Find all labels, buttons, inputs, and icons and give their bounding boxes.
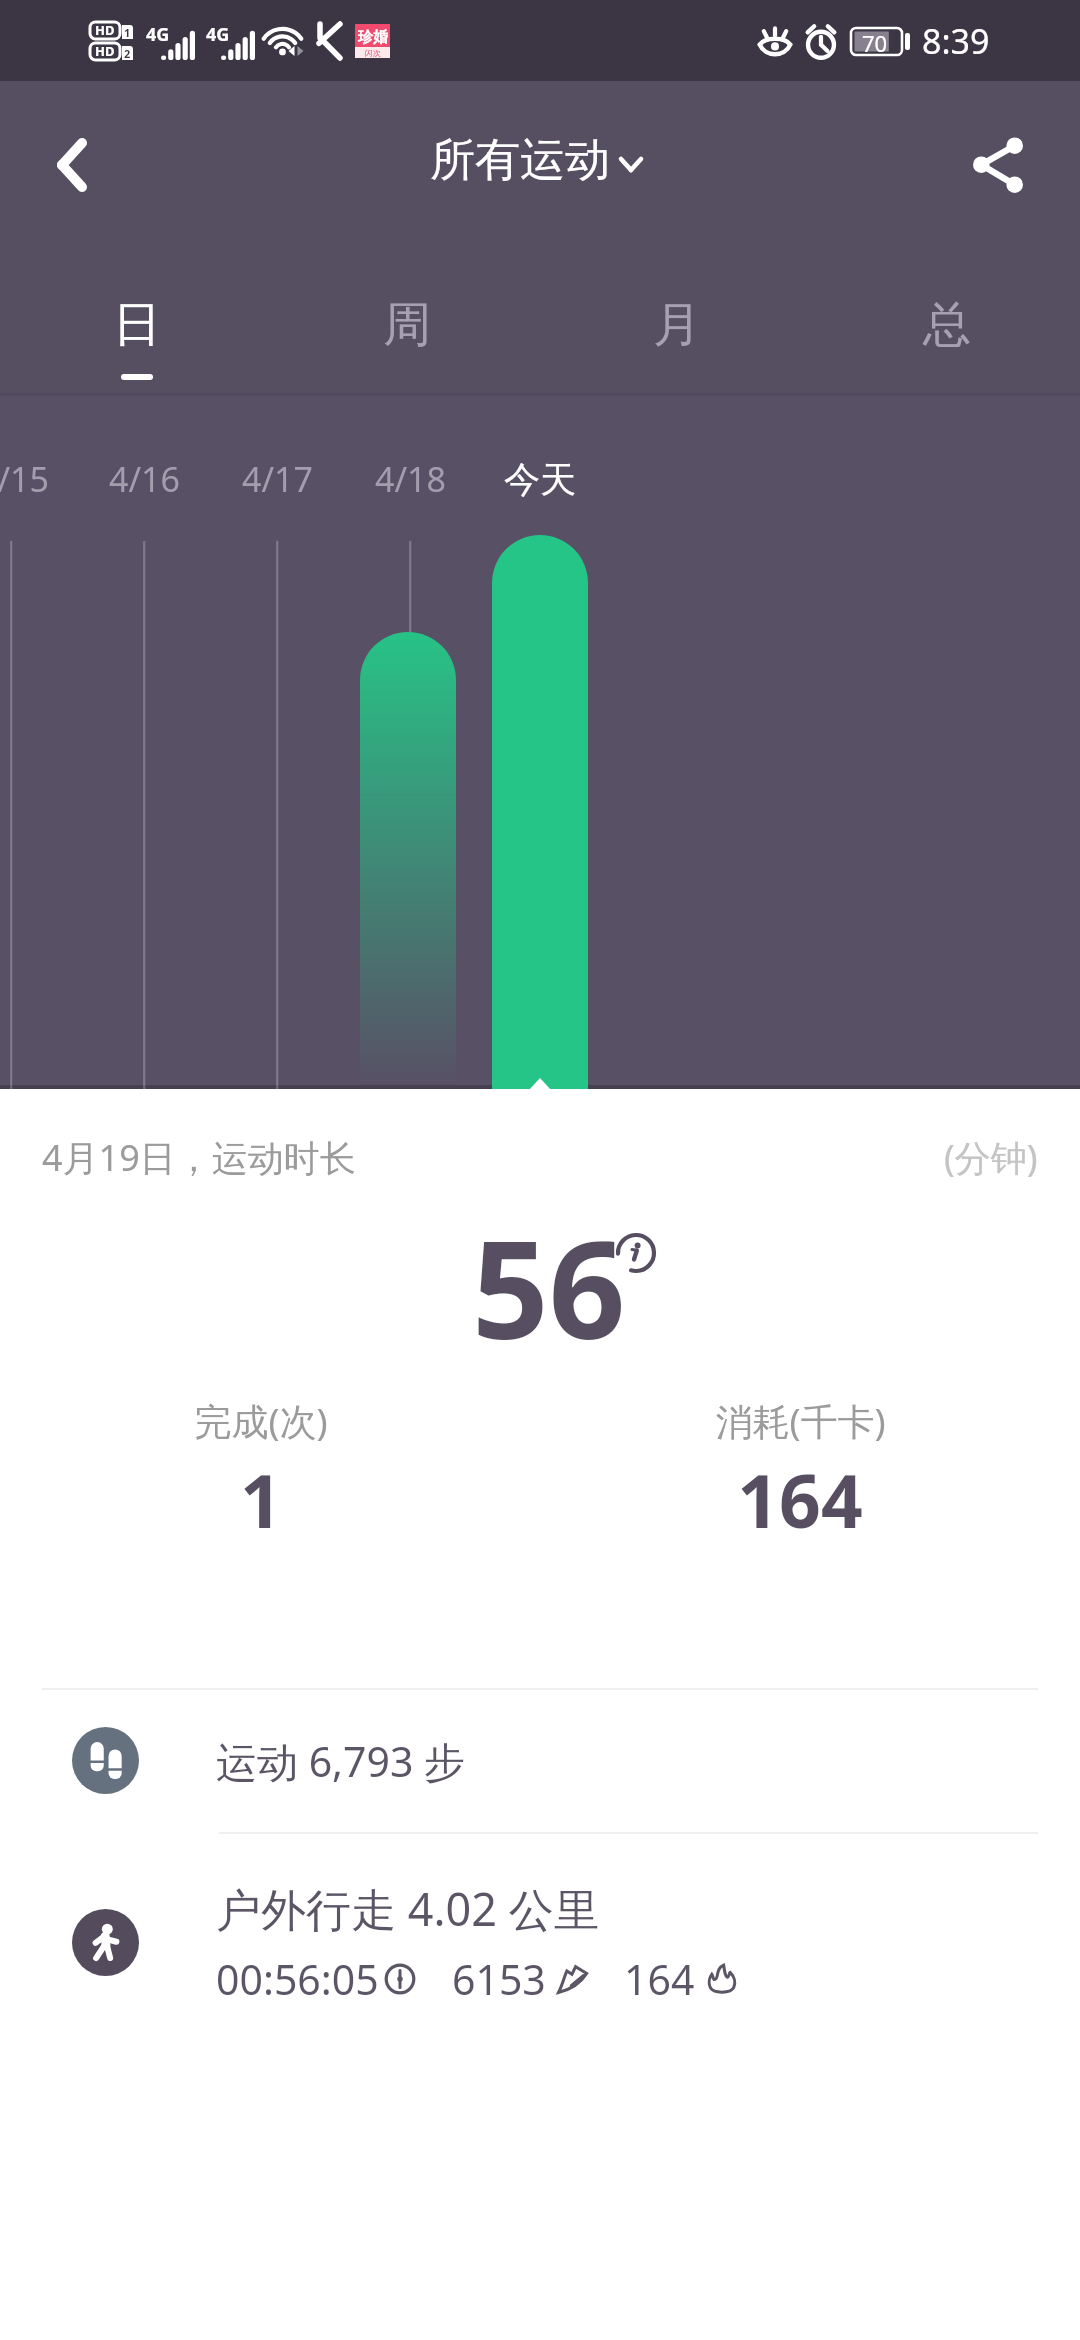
staticText: 总 [923, 295, 971, 355]
staticText: 4/17 [242, 456, 313, 502]
staticText: 164 [737, 1450, 863, 1549]
staticText: (分钟) [944, 1133, 1038, 1182]
staticText: 6153 [452, 1951, 546, 2007]
button[interactable]: Back [12, 106, 132, 224]
staticText: 1 [124, 25, 131, 39]
staticText: 周 [383, 295, 431, 355]
button[interactable]: Share [943, 108, 1053, 222]
staticText: 2 [124, 46, 131, 60]
staticText: 消耗(千卡) [715, 1395, 886, 1446]
staticText: 4/16 [109, 456, 180, 502]
staticText: 4G [206, 22, 230, 47]
staticText: 8:39 [922, 18, 990, 64]
button[interactable]: 所有运动 [430, 104, 644, 216]
staticText: 今天 [504, 457, 576, 502]
staticText: 164 [624, 1951, 695, 2007]
staticText: 完成(次) [194, 1395, 328, 1446]
staticText: 4/15 [0, 456, 49, 502]
button[interactable]: 户外行走 4.02 公里 [0, 1850, 1080, 2035]
staticText: 70 [862, 28, 888, 55]
button[interactable]: 周 [270, 270, 540, 393]
staticText: 4月19日，运动时长 [42, 1133, 356, 1182]
staticText: 所有运动 [430, 132, 610, 189]
staticText: 珍婚 [358, 28, 388, 47]
staticText: 4/18 [375, 456, 446, 502]
staticText: 56 [472, 1196, 626, 1379]
staticText: 运动 6,793 步 [216, 1733, 466, 1789]
button[interactable]: 总 [810, 270, 1080, 393]
button[interactable]: Info [614, 1231, 658, 1275]
button[interactable]: 运动 6,793 步 [0, 1689, 1080, 1832]
staticText: 闪次 [365, 48, 381, 58]
staticText: HD [95, 42, 115, 59]
button[interactable]: 日 [0, 270, 270, 393]
staticText: 4G [146, 22, 170, 47]
staticText: 1 [240, 1450, 282, 1549]
button[interactable]: 月 [540, 270, 810, 393]
staticText: 日 [113, 295, 161, 355]
staticText: 00:56:05 [216, 1951, 379, 2007]
staticText: 月 [653, 295, 701, 355]
staticText: 户外行走 4.02 公里 [216, 1878, 599, 1939]
staticText: HD [95, 21, 115, 38]
